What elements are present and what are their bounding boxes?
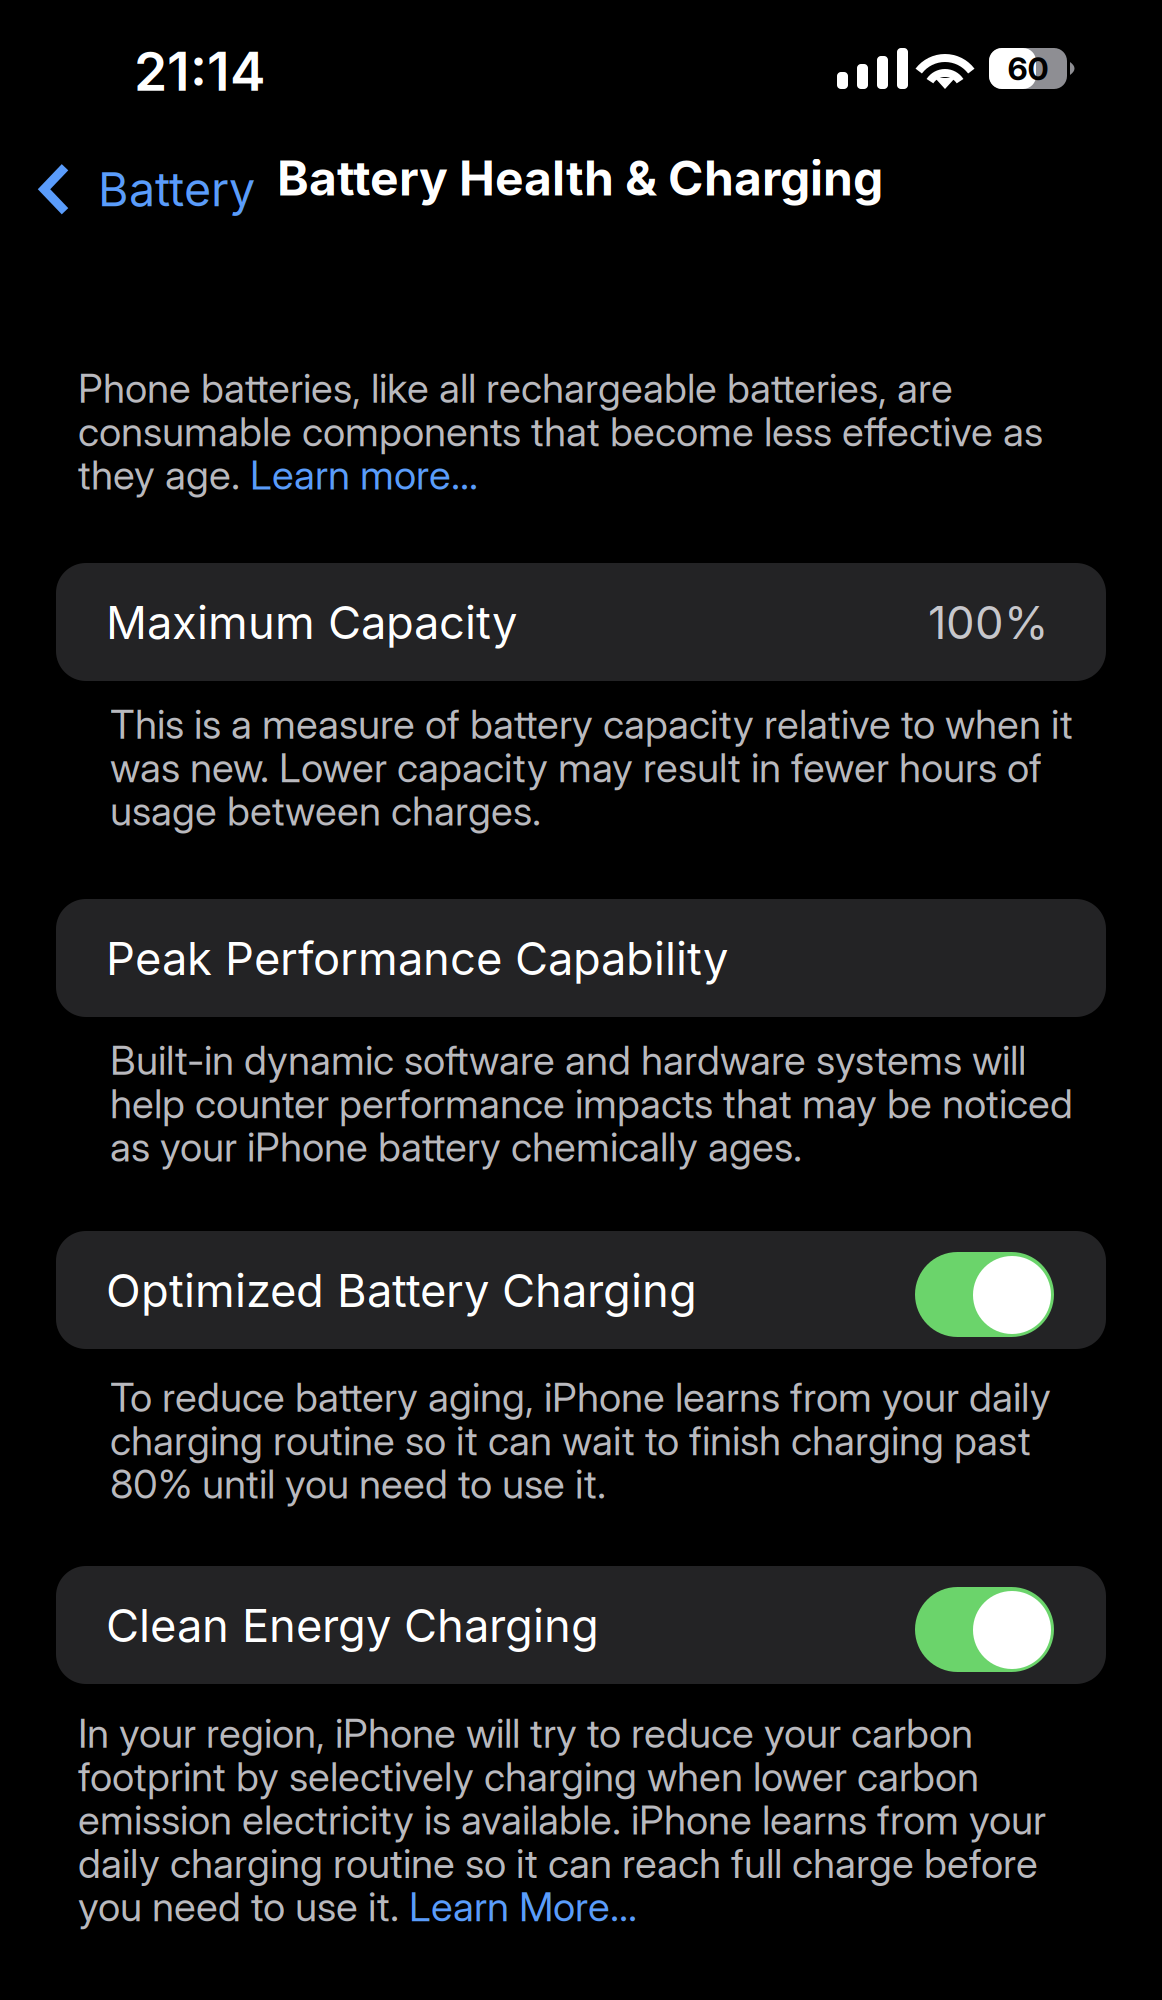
staticText: To reduce battery aging, iPhone learns f… [110,1373,1051,1508]
staticText: This is a measure of battery capacity re… [110,700,1073,835]
staticText: Battery Health & Charging [277,149,883,207]
staticText: 100% [928,595,1049,650]
staticText: Built-in dynamic software and hardware s… [110,1036,1073,1171]
button[interactable]: Clean Energy Charging [56,1566,1106,1684]
button[interactable]: Maximum Capacity [56,563,1106,681]
staticText: Clean Energy Charging [106,1598,599,1653]
staticText: Peak Performance Capability [106,931,728,986]
button[interactable]: Optimized Battery Charging [56,1231,1106,1349]
staticText: Phone batteries, like all rechargeable b… [78,364,1043,499]
button[interactable]: Peak Performance Capability [56,899,1106,1017]
staticText: 60 [1007,49,1048,88]
button[interactable]: Battery [24,141,271,237]
staticText: Maximum Capacity [106,595,517,650]
staticText: In your region, iPhone will try to reduc… [78,1709,1046,1931]
staticText: 21:14 [134,39,266,103]
staticText: Battery [98,161,255,217]
staticText: Optimized Battery Charging [106,1263,697,1318]
